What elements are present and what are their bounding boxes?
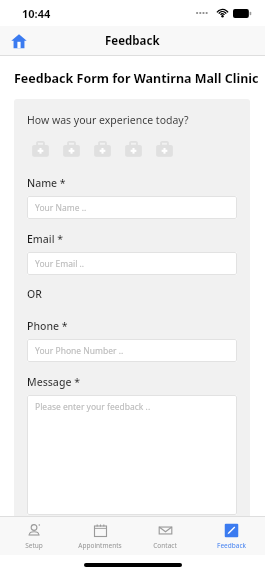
button[interactable]: Setup — [3, 517, 65, 555]
staticText: Your Name .. — [35, 202, 87, 213]
staticText: Feedback — [217, 541, 246, 550]
button[interactable]: Rating 1 — [27, 136, 53, 162]
staticText: OR — [27, 287, 42, 301]
staticText: Email * — [27, 232, 63, 246]
button[interactable]: Appointments — [69, 517, 131, 555]
staticText: Appointments — [78, 541, 122, 550]
staticText: Your Phone Number .. — [35, 345, 124, 356]
button[interactable]: Your Name .. — [27, 196, 237, 219]
button[interactable]: Rating 2 — [58, 136, 84, 162]
staticText: Setup — [25, 541, 43, 550]
staticText: Message * — [27, 375, 80, 389]
staticText: Please enter your feedback .. — [35, 401, 151, 413]
button[interactable]: Rating 3 — [89, 136, 115, 162]
staticText: 10:44 — [22, 6, 51, 21]
staticText: Phone * — [27, 319, 68, 333]
button[interactable]: Your Email .. — [27, 252, 237, 275]
button[interactable]: Home — [6, 28, 32, 54]
button[interactable]: Please enter your feedback .. — [27, 395, 237, 515]
staticText: Feedback Form for Wantirna Mall Clinic — [14, 70, 259, 87]
staticText: Feedback — [105, 33, 160, 49]
button[interactable]: Rating 5 — [151, 136, 177, 162]
staticText: How was your experience today? — [27, 113, 189, 127]
button[interactable]: Rating 4 — [120, 136, 146, 162]
button[interactable]: Feedback — [200, 517, 262, 555]
staticText: Contact — [153, 541, 177, 550]
staticText: Name * — [27, 176, 66, 190]
button[interactable]: Your Phone Number .. — [27, 339, 237, 362]
button[interactable]: Contact — [134, 517, 196, 555]
staticText: Your Email .. — [35, 258, 85, 269]
